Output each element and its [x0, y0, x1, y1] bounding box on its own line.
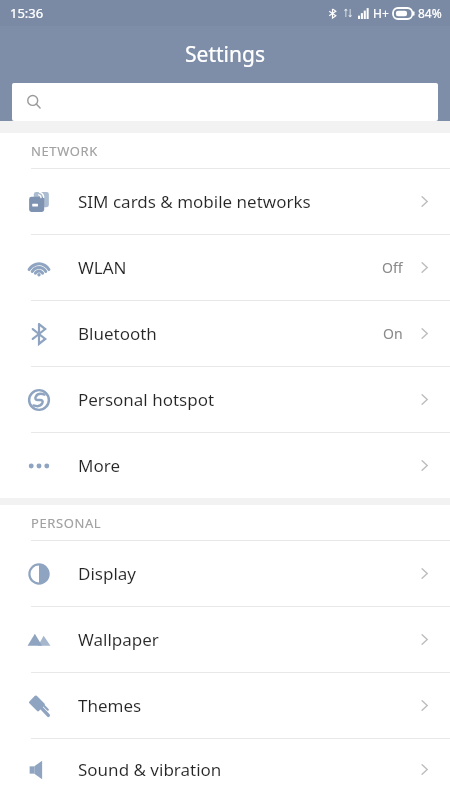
staticText: 84%: [418, 5, 442, 21]
staticText: Display: [78, 562, 417, 585]
staticText: More: [78, 454, 417, 477]
staticText: On: [383, 324, 403, 343]
staticText: Bluetooth: [78, 322, 383, 345]
button[interactable]: Sound & vibration: [0, 739, 450, 800]
staticText: Personal hotspot: [78, 388, 417, 411]
button[interactable]: [12, 83, 438, 121]
staticText: 15:36: [10, 4, 44, 22]
staticText: Settings: [185, 40, 265, 69]
button[interactable]: Personal hotspot: [0, 367, 450, 432]
staticText: H+: [373, 5, 389, 21]
button[interactable]: Bluetooth: [0, 301, 450, 366]
staticText: PERSONAL: [31, 514, 102, 532]
button[interactable]: Themes: [0, 673, 450, 738]
staticText: SIM cards & mobile networks: [78, 190, 417, 213]
staticText: Sound & vibration: [78, 758, 417, 781]
staticText: WLAN: [78, 256, 382, 279]
staticText: Themes: [78, 694, 417, 717]
staticText: NETWORK: [31, 142, 98, 160]
button[interactable]: More: [0, 433, 450, 498]
button[interactable]: WLAN: [0, 235, 450, 300]
button[interactable]: Wallpaper: [0, 607, 450, 672]
button[interactable]: SIM cards & mobile networks: [0, 169, 450, 234]
button[interactable]: Display: [0, 541, 450, 606]
staticText: Off: [382, 258, 403, 277]
staticText: Wallpaper: [78, 628, 417, 651]
